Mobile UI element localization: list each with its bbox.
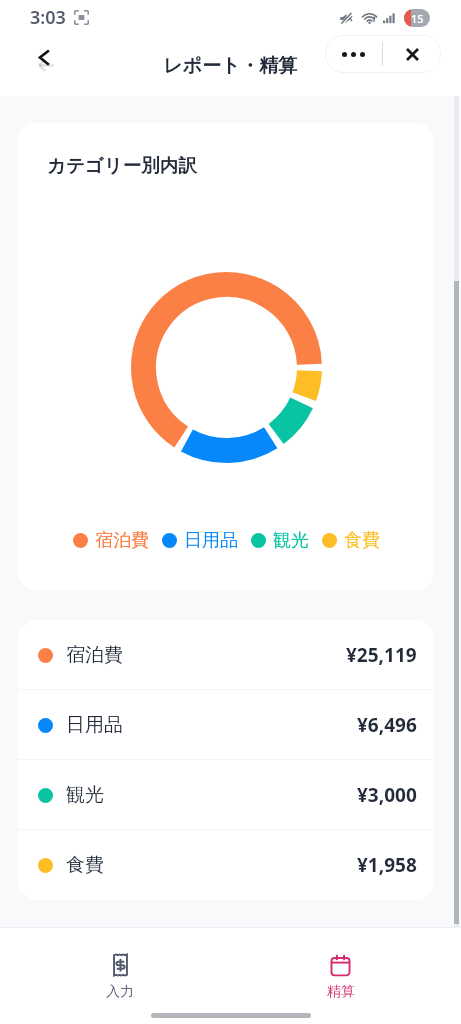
staticText: 入力	[106, 983, 134, 1001]
staticText: 観光	[273, 529, 309, 552]
staticText: 食費	[344, 529, 380, 552]
staticText: レポート・精算	[163, 54, 298, 78]
staticText: 宿泊費	[66, 643, 123, 667]
button[interactable]: More options	[325, 35, 382, 73]
staticText: 食費	[66, 853, 104, 877]
staticText: 3:03	[30, 5, 66, 30]
button[interactable]: 精算	[230, 928, 461, 1007]
button[interactable]: 食費	[18, 830, 434, 900]
button[interactable]: 宿泊費	[18, 620, 434, 690]
staticText: ¥3,000	[357, 782, 417, 808]
staticText: 15	[411, 11, 424, 26]
button[interactable]: 入力	[0, 928, 230, 1007]
staticText: 日用品	[66, 713, 123, 737]
button[interactable]: Close	[383, 35, 441, 73]
staticText: 観光	[66, 783, 104, 807]
staticText: 精算	[327, 983, 355, 1001]
staticText: ¥25,119	[346, 642, 417, 668]
staticText: ¥6,496	[357, 712, 417, 738]
staticText: 宿泊費	[95, 529, 149, 552]
staticText: ¥1,958	[357, 852, 417, 878]
button[interactable]: Back	[25, 37, 65, 77]
button[interactable]: 観光	[18, 760, 434, 830]
staticText: カテゴリー別内訳	[47, 154, 197, 177]
button[interactable]: 日用品	[18, 690, 434, 760]
staticText: 日用品	[184, 529, 238, 552]
